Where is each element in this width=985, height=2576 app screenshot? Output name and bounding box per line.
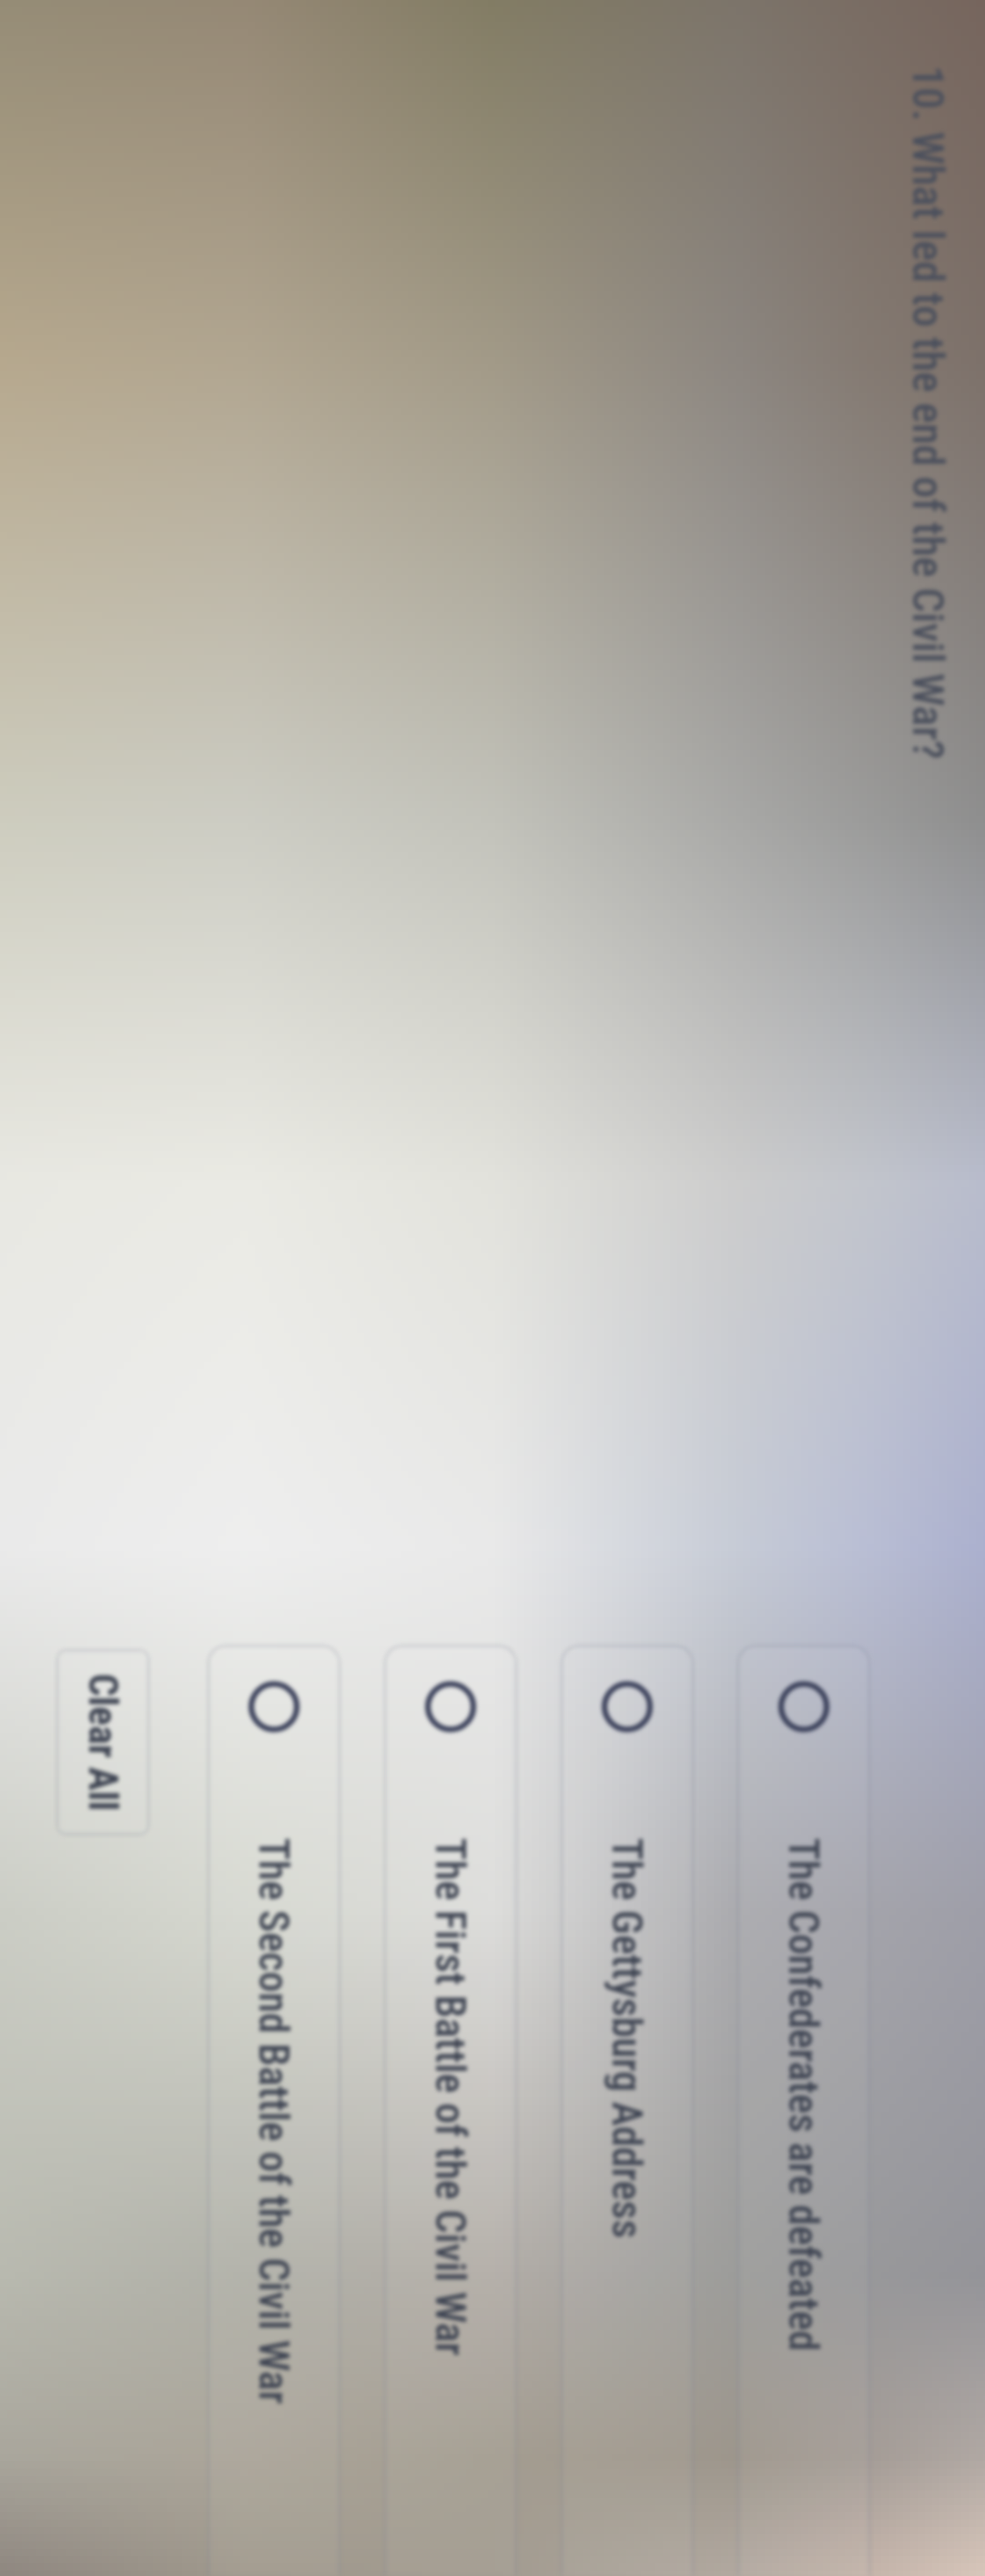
other: Select answer bbox=[778, 1681, 829, 1732]
staticText: Clear All bbox=[79, 1673, 127, 1811]
button[interactable]: Select answer bbox=[561, 1645, 694, 2576]
button[interactable]: Select answer bbox=[737, 1645, 870, 2576]
staticText: The Confederates are defeated bbox=[779, 1838, 828, 2352]
button[interactable]: Clear All bbox=[56, 1649, 149, 1835]
staticText: The First Battle of the Civil War bbox=[426, 1838, 475, 2357]
staticText: The Gettysburg Address bbox=[603, 1838, 652, 2239]
button[interactable]: Select answer bbox=[384, 1645, 517, 2576]
button[interactable]: Select answer bbox=[208, 1645, 340, 2576]
other: Select answer bbox=[249, 1681, 300, 1732]
staticText: The Second Battle of the Civil War bbox=[249, 1838, 299, 2405]
staticText: 10. What led to the end of the Civil War… bbox=[903, 66, 954, 760]
other: Select answer bbox=[602, 1681, 653, 1732]
other: Select answer bbox=[425, 1681, 476, 1732]
